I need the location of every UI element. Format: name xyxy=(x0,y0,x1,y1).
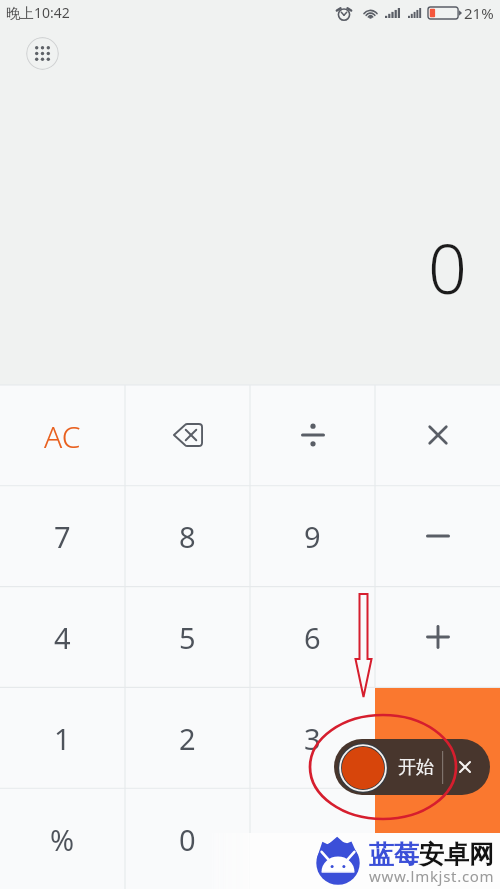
staticText: AC xyxy=(44,416,81,457)
button[interactable]: 0 xyxy=(125,788,250,889)
staticText: 4 xyxy=(54,618,71,657)
staticText: 0 xyxy=(428,221,467,314)
staticText: 安卓网 xyxy=(419,839,494,870)
button[interactable] xyxy=(375,788,500,889)
staticText: 2 xyxy=(179,719,196,758)
staticText: 1 xyxy=(54,719,71,758)
button[interactable]: Minus xyxy=(375,485,500,586)
staticText: 21% xyxy=(464,3,494,23)
other: Plus xyxy=(427,626,449,648)
button[interactable]: 2 xyxy=(125,687,250,788)
button[interactable]: 3 xyxy=(250,687,375,788)
button[interactable]: Divide xyxy=(250,385,375,485)
other: Minus xyxy=(427,527,449,545)
button[interactable]: . xyxy=(250,788,375,889)
button[interactable]: Multiply xyxy=(375,385,500,485)
other: Backspace xyxy=(173,423,203,447)
button[interactable] xyxy=(375,687,500,788)
button[interactable]: 7 xyxy=(0,485,125,586)
staticText: 0 xyxy=(179,820,196,859)
button[interactable]: 4 xyxy=(0,586,125,687)
button[interactable]: 5 xyxy=(125,586,250,687)
staticText: www.lmkjst.com xyxy=(369,866,495,886)
other: Close xyxy=(458,760,472,774)
button[interactable]: Backspace xyxy=(125,385,250,485)
staticText: 开始 xyxy=(398,756,434,779)
button[interactable]: 6 xyxy=(250,586,375,687)
staticText: 6 xyxy=(304,618,321,657)
staticText: 5 xyxy=(179,618,196,657)
staticText: 晚上10:42 xyxy=(6,3,70,22)
button[interactable]: 1 xyxy=(0,687,125,788)
staticText: 8 xyxy=(179,517,196,556)
button[interactable]: 开始 xyxy=(334,739,490,795)
staticText: 蓝莓 xyxy=(369,839,419,870)
staticText: 7 xyxy=(54,517,71,556)
staticText: % xyxy=(50,820,75,859)
button[interactable]: 9 xyxy=(250,485,375,586)
staticText: 9 xyxy=(304,517,321,556)
staticText: 3 xyxy=(304,719,321,758)
other: Divide xyxy=(302,424,324,446)
button[interactable]: Plus xyxy=(375,586,500,687)
button[interactable]: AC xyxy=(0,385,125,485)
staticText: . xyxy=(309,820,317,859)
button[interactable]: 8 xyxy=(125,485,250,586)
button[interactable]: Apps xyxy=(26,37,59,70)
other: Multiply xyxy=(429,426,447,444)
button[interactable]: % xyxy=(0,788,125,889)
